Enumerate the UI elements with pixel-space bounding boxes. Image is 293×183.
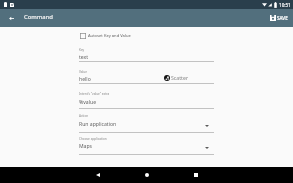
button[interactable]: SAVE	[270, 9, 293, 27]
button[interactable]: Home	[132, 167, 162, 183]
staticText: SAVE	[277, 15, 288, 21]
staticText: Command	[24, 13, 53, 21]
staticText: Scatter	[171, 74, 189, 81]
button[interactable]: Choose application	[79, 137, 214, 141]
button[interactable]: Action	[79, 114, 214, 118]
staticText: Maps	[79, 143, 93, 150]
staticText: Value	[79, 70, 87, 74]
staticText: text	[79, 54, 89, 61]
staticText: Action	[79, 114, 89, 118]
button[interactable]: Back	[83, 167, 113, 183]
staticText: hello	[79, 76, 91, 83]
staticText: Intent's "value" extra	[79, 92, 110, 96]
staticText: %value	[79, 99, 97, 106]
button[interactable]: Recent apps	[181, 167, 211, 183]
staticText: Key	[79, 48, 85, 52]
staticText: Run application	[79, 121, 117, 128]
staticText: Choose application	[79, 137, 107, 141]
button[interactable]: Autoset Key and Value	[80, 33, 131, 39]
staticText: 10:51	[279, 2, 291, 8]
button[interactable]: Navigate up	[2, 9, 20, 27]
staticText: Autoset Key and Value	[88, 33, 131, 39]
